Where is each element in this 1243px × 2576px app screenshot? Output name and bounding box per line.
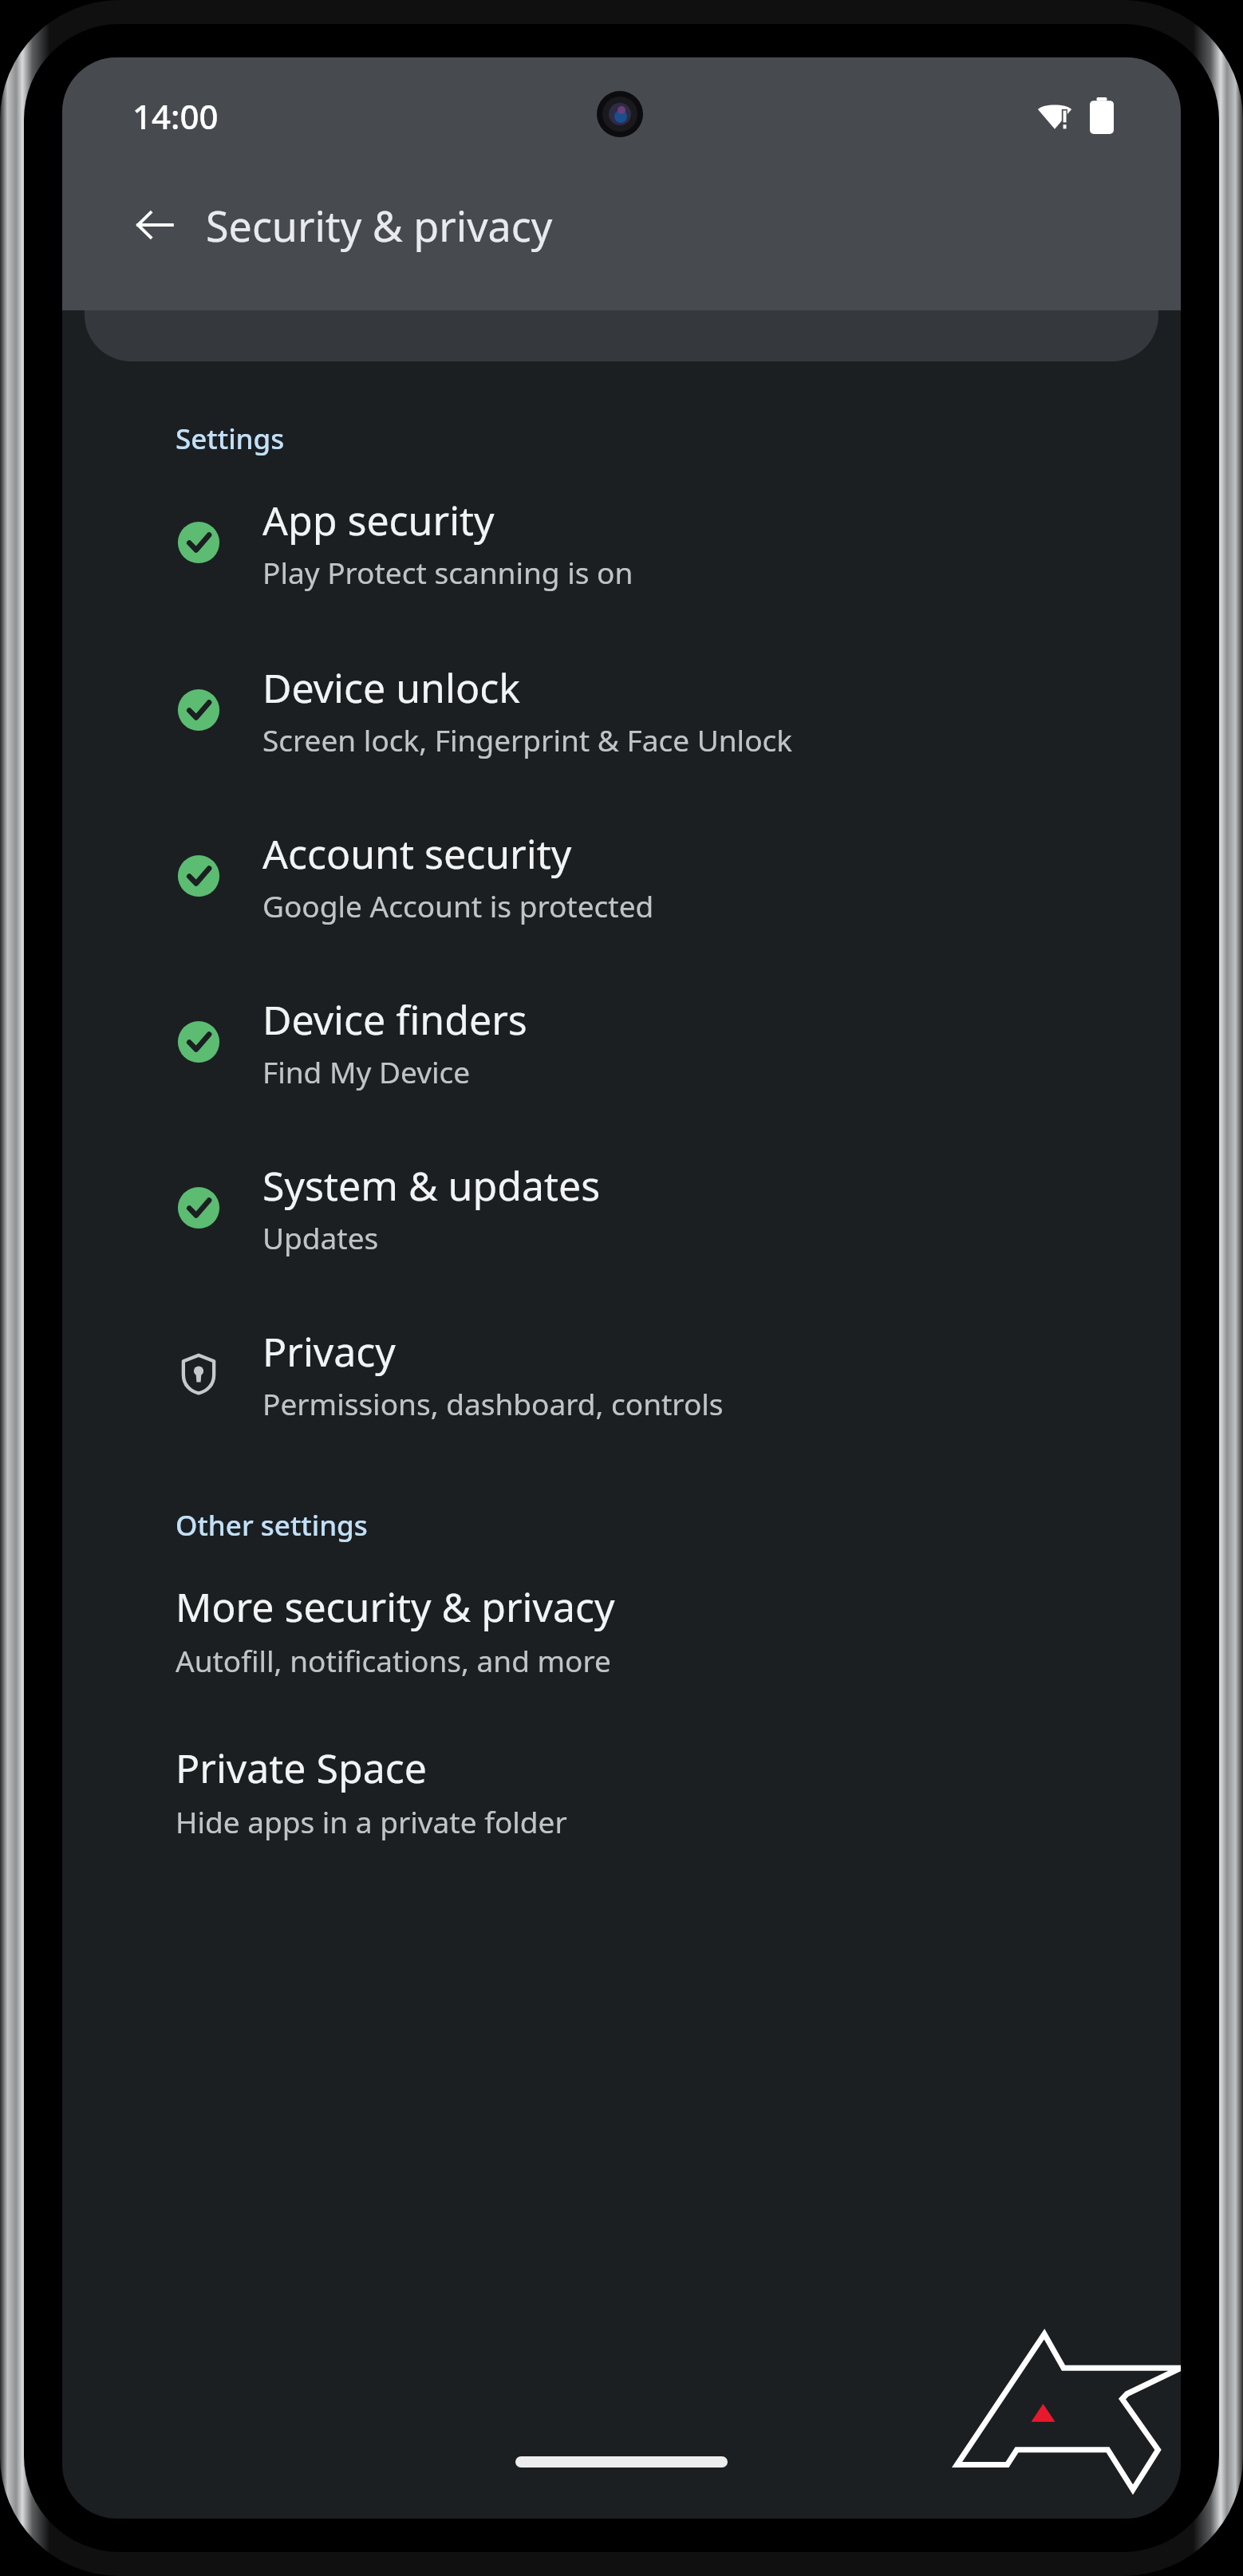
staticText: Google Account is protected [262, 886, 654, 925]
button[interactable]: App security [62, 458, 1181, 627]
button[interactable]: Account security [62, 793, 1181, 959]
staticText: Account security [262, 826, 572, 881]
staticText: More security & privacy [176, 1580, 615, 1634]
staticText: Private Space [176, 1741, 427, 1795]
staticText: System & updates [262, 1158, 601, 1213]
button[interactable]: Privacy [62, 1291, 1181, 1457]
button[interactable]: System & updates [62, 1125, 1181, 1291]
staticText: Device finders [262, 992, 527, 1047]
staticText: Settings [176, 420, 285, 458]
button[interactable]: Device finders [62, 959, 1181, 1125]
staticText: Find My Device [262, 1051, 471, 1091]
staticText: Play Protect scanning is on [262, 552, 633, 592]
staticText: Security & privacy [206, 197, 553, 254]
button[interactable]: Back [116, 187, 193, 263]
staticText: Hide apps in a private folder [176, 1801, 567, 1841]
staticText: Updates [262, 1217, 379, 1257]
staticText: App security [262, 493, 495, 547]
button[interactable]: More security & privacy [62, 1544, 1181, 1704]
button[interactable]: Private Space [62, 1704, 1181, 1865]
staticText: Privacy [262, 1324, 396, 1379]
staticText: 14:00 [132, 93, 219, 139]
staticText: Other settings [176, 1506, 368, 1544]
staticText: Screen lock, Fingerprint & Face Unlock [262, 720, 793, 759]
button[interactable]: Device unlock [62, 627, 1181, 793]
staticText: Device unlock [262, 661, 520, 715]
staticText: Permissions, dashboard, controls [262, 1383, 724, 1423]
staticText: Autofill, notifications, and more [176, 1640, 611, 1680]
